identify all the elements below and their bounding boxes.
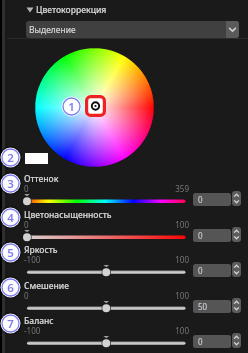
staticText: 5 (7, 245, 14, 261)
staticText: 6 (7, 280, 14, 296)
button[interactable]: Callout 6 (0, 276, 22, 299)
staticText: 0 (198, 230, 203, 241)
button[interactable]: 50 (193, 300, 231, 313)
staticText: 359 (128, 183, 189, 194)
staticText: -100 (24, 254, 41, 265)
button[interactable]: Callout 5 (0, 241, 22, 264)
staticText: Баланс (24, 315, 54, 327)
staticText: Оттенок (24, 173, 59, 185)
button[interactable]: Callout 1 (60, 95, 83, 118)
button[interactable]: Callout 7 (0, 312, 22, 335)
button[interactable]: Callout 3 (0, 172, 22, 195)
staticText: 1 (68, 99, 75, 115)
button[interactable]: Increase or decrease value (232, 191, 241, 206)
staticText: Яркость (24, 244, 58, 256)
staticText: 0 (198, 336, 203, 347)
button[interactable] (20, 299, 190, 313)
button[interactable]: Callout 2 (0, 146, 22, 169)
staticText: Цветокоррекция (36, 4, 107, 16)
staticText: -100 (24, 325, 41, 336)
button[interactable]: Increase or decrease value (232, 298, 241, 313)
staticText: 100 (128, 254, 189, 265)
button[interactable] (20, 228, 190, 242)
button[interactable]: Increase or decrease value (232, 262, 241, 277)
button[interactable] (20, 192, 190, 206)
button[interactable]: 0 (193, 193, 231, 206)
staticText: 100 (128, 219, 189, 230)
button[interactable]: Increase or decrease value (232, 227, 241, 242)
staticText: 0 (24, 219, 29, 230)
button[interactable]: Increase or decrease value (232, 333, 241, 348)
button[interactable]: 0 (193, 335, 231, 348)
staticText: 4 (7, 210, 14, 226)
staticText: 0 (198, 194, 203, 205)
staticText: 0 (198, 265, 203, 276)
staticText: 3 (7, 176, 14, 192)
button[interactable]: Callout 4 (0, 206, 22, 229)
staticText: Смешение (24, 280, 69, 292)
staticText: Цветонасыщенность (24, 209, 112, 221)
staticText: 2 (7, 150, 14, 166)
button[interactable]: Выделение (26, 21, 239, 38)
button[interactable]: Цветокоррекция (25, 2, 106, 17)
button[interactable]: 0 (193, 229, 231, 242)
staticText: Выделение (29, 24, 76, 36)
staticText: 100 (128, 290, 189, 301)
staticText: 100 (128, 325, 189, 336)
button[interactable] (20, 263, 190, 277)
button[interactable]: 0 (193, 264, 231, 277)
staticText: 0 (24, 183, 29, 194)
staticText: 7 (7, 316, 14, 332)
button[interactable] (20, 334, 190, 348)
staticText: 50 (198, 301, 208, 312)
staticText: 0 (24, 290, 29, 301)
